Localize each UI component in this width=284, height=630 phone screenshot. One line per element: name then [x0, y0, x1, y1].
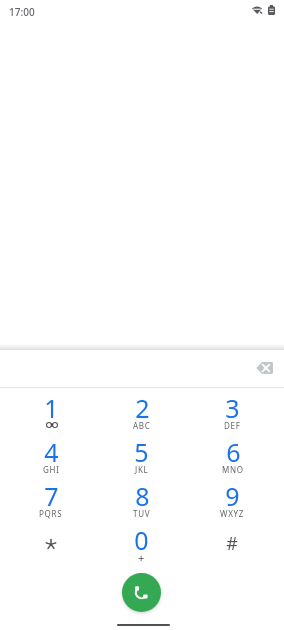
staticText: GHI: [43, 464, 60, 475]
staticText: 7: [44, 479, 59, 513]
button[interactable]: 3: [187, 385, 278, 429]
button[interactable]: Backspace: [246, 349, 283, 386]
button[interactable]: 6: [187, 429, 278, 473]
button[interactable]: [6, 517, 96, 561]
staticText: 3: [225, 391, 240, 425]
staticText: 4: [44, 435, 59, 469]
staticText: DEF: [224, 420, 241, 431]
staticText: 2: [135, 391, 150, 425]
staticText: JKL: [135, 464, 149, 475]
staticText: 5: [134, 435, 149, 469]
button[interactable]: 8: [96, 473, 187, 517]
staticText: 1: [44, 391, 59, 425]
button[interactable]: 2: [96, 385, 187, 429]
staticText: ABC: [133, 420, 151, 431]
staticText: #: [226, 531, 238, 556]
button[interactable]: 4: [6, 429, 96, 473]
button[interactable]: 1: [6, 385, 96, 429]
staticText: WXYZ: [220, 508, 245, 519]
staticText: 8: [135, 479, 150, 513]
staticText: TUV: [133, 508, 151, 519]
button[interactable]: 7: [6, 473, 96, 517]
staticText: +: [138, 550, 145, 565]
staticText: 17:00: [9, 5, 35, 19]
button[interactable]: 9: [187, 473, 278, 517]
staticText: PQRS: [39, 508, 63, 519]
button[interactable]: 0: [96, 517, 187, 561]
button[interactable]: Call: [122, 573, 161, 612]
staticText: MNO: [222, 464, 244, 475]
staticText: 9: [225, 479, 240, 513]
staticText: 6: [226, 435, 241, 469]
staticText: 0: [134, 523, 149, 557]
button[interactable]: #: [187, 517, 278, 561]
button[interactable]: 5: [96, 429, 187, 473]
